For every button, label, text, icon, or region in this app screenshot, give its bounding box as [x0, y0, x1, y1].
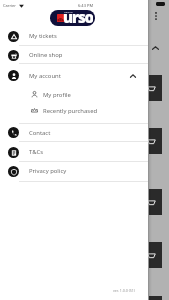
staticText: URBAN	[64, 11, 73, 14]
button[interactable]: My profile	[0, 86, 148, 103]
staticText: Privacy policy	[29, 167, 67, 175]
button[interactable]: Online shop	[0, 46, 148, 64]
staticText: Recently purchased	[43, 107, 98, 115]
staticText: T&Cs	[29, 148, 44, 156]
staticText: 6:43 PM	[78, 3, 94, 8]
staticText: My profile	[43, 91, 71, 99]
button[interactable]: My account	[0, 64, 148, 87]
staticText: ver. 1.0.0 (51)	[113, 288, 135, 293]
button[interactable]: Collapse	[150, 42, 161, 53]
button[interactable]: T&Cs	[0, 142, 148, 162]
staticText: My account	[29, 72, 61, 80]
button[interactable]: urso	[50, 10, 95, 26]
button[interactable]: Recently purchased	[0, 102, 148, 119]
staticText: Contact	[29, 129, 51, 137]
staticText: My tickets	[29, 32, 57, 40]
staticText: Online shop	[29, 51, 63, 59]
button[interactable]: Privacy policy	[0, 161, 148, 181]
button[interactable]: Contact	[0, 123, 148, 142]
button[interactable]: More options	[151, 11, 160, 20]
staticText: urso	[63, 10, 93, 23]
staticText: Carrier	[3, 3, 17, 8]
button[interactable]: My tickets	[0, 27, 148, 45]
